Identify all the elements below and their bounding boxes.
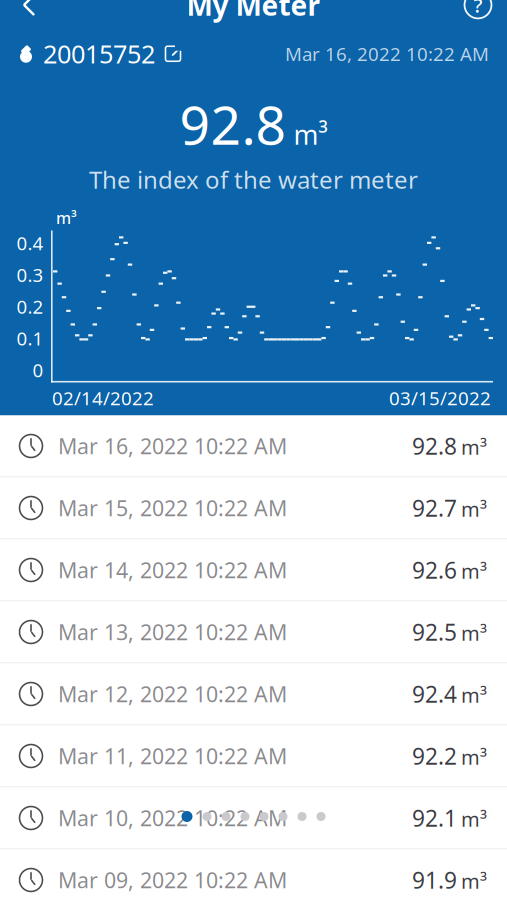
button[interactable]: Mar 13, 2022 10:22 AM — [0, 601, 507, 663]
staticText: m³ — [461, 558, 487, 584]
staticText: 20015752 — [43, 37, 155, 70]
staticText: 0.3 — [16, 262, 43, 287]
staticText: 0.1 — [16, 326, 43, 351]
staticText: m³ — [461, 744, 487, 770]
staticText: Mar 09, 2022 10:22 AM — [58, 866, 287, 894]
button[interactable]: Mar 14, 2022 10:22 AM — [0, 539, 507, 601]
staticText: Mar 10, 2022 10:22 AM — [58, 804, 287, 832]
staticText: ? — [473, 0, 482, 18]
staticText: m³ — [461, 434, 487, 460]
staticText: m³ — [56, 207, 77, 228]
staticText: Mar 16, 2022 10:22 AM — [58, 432, 287, 460]
staticText: Mar 11, 2022 10:22 AM — [58, 742, 287, 770]
staticText: 92.1 — [412, 803, 457, 833]
staticText: m³ — [461, 496, 487, 522]
button[interactable]: Mar 09, 2022 10:22 AM — [0, 849, 507, 900]
button[interactable]: Mar 15, 2022 10:22 AM — [0, 477, 507, 539]
staticText: Mar 12, 2022 10:22 AM — [58, 680, 287, 708]
staticText: Mar 14, 2022 10:22 AM — [58, 556, 287, 584]
staticText: My Meter — [186, 0, 320, 24]
staticText: 92.8 — [412, 431, 457, 461]
staticText: 02/14/2022 — [52, 385, 154, 410]
staticText: 91.9 — [412, 865, 457, 895]
staticText: The index of the water meter — [89, 163, 418, 195]
staticText: m³ — [461, 806, 487, 832]
button[interactable]: Mar 12, 2022 10:22 AM — [0, 663, 507, 725]
staticText: 92.7 — [412, 493, 457, 523]
button[interactable]: 20015752 — [18, 33, 182, 74]
button[interactable]: Help — [455, 0, 501, 26]
staticText: 92.6 — [412, 555, 457, 585]
staticText: m³ — [461, 682, 487, 708]
staticText: Mar 16, 2022 10:22 AM — [285, 41, 489, 66]
staticText: 92.5 — [412, 617, 457, 647]
staticText: 92.4 — [412, 679, 457, 709]
staticText: Consumption — [177, 422, 296, 447]
button[interactable]: Back — [6, 0, 52, 26]
button[interactable]: Mar 16, 2022 10:22 AM — [0, 415, 507, 477]
staticText: 0.2 — [16, 294, 43, 319]
staticText: Mar 13, 2022 10:22 AM — [58, 618, 287, 646]
staticText: m³ — [461, 620, 487, 646]
staticText: m³ — [293, 117, 327, 152]
button[interactable]: Mar 11, 2022 10:22 AM — [0, 725, 507, 787]
staticText: m³ — [461, 868, 487, 894]
staticText: Mar 15, 2022 10:22 AM — [58, 494, 287, 522]
staticText: 0 — [32, 358, 43, 382]
staticText: 0.4 — [16, 230, 43, 255]
staticText: 03/15/2022 — [389, 385, 491, 410]
staticText: 92.8 — [179, 89, 286, 159]
staticText: 92.2 — [412, 741, 457, 771]
button[interactable]: Mar 10, 2022 10:22 AM — [0, 787, 507, 849]
